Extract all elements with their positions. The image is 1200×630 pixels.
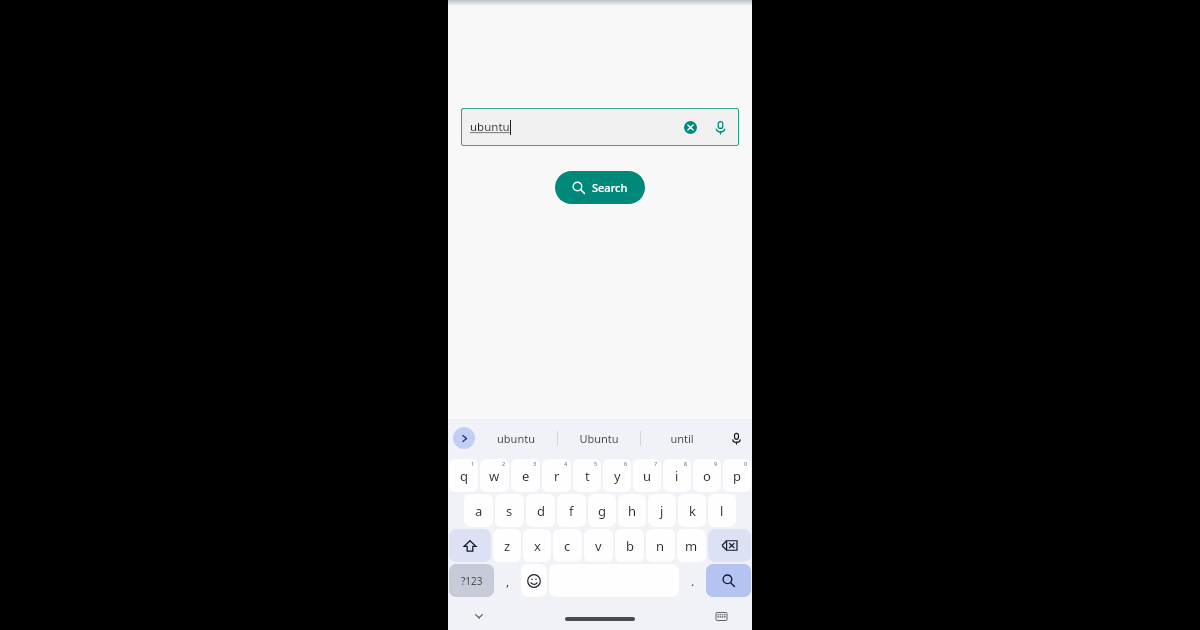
button[interactable]: n bbox=[646, 529, 675, 562]
staticText: . bbox=[691, 573, 695, 589]
button[interactable]: j bbox=[648, 494, 676, 527]
button[interactable]: b bbox=[615, 529, 644, 562]
button[interactable]: Search bbox=[706, 564, 751, 597]
staticText: i bbox=[675, 467, 679, 485]
button[interactable]: o bbox=[693, 459, 721, 492]
staticText: , bbox=[506, 573, 510, 589]
button[interactable]: Voice input bbox=[723, 425, 749, 451]
staticText: l bbox=[720, 502, 724, 520]
staticText: b bbox=[626, 537, 634, 555]
button[interactable]: f bbox=[557, 494, 586, 527]
staticText: m bbox=[685, 537, 698, 555]
staticText: Ubuntu bbox=[579, 431, 619, 446]
button[interactable]: Clear bbox=[675, 112, 705, 142]
button[interactable]: i bbox=[663, 459, 691, 492]
button[interactable]: ubuntu bbox=[475, 419, 557, 457]
staticText: 7 bbox=[654, 460, 658, 467]
button[interactable]: Period bbox=[681, 564, 704, 597]
button[interactable]: h bbox=[618, 494, 646, 527]
button[interactable]: c bbox=[553, 529, 582, 562]
button[interactable]: Comma bbox=[496, 564, 519, 597]
staticText: h bbox=[628, 502, 637, 520]
button[interactable]: m bbox=[677, 529, 706, 562]
staticText: ubuntu bbox=[497, 431, 535, 446]
button[interactable]: ubuntu bbox=[461, 108, 739, 146]
staticText: c bbox=[564, 537, 571, 555]
button[interactable]: Hide keyboard bbox=[468, 605, 490, 627]
button[interactable]: Ubuntu bbox=[558, 419, 640, 457]
staticText: u bbox=[643, 467, 652, 485]
staticText: a bbox=[475, 502, 483, 520]
button[interactable]: z bbox=[493, 529, 521, 562]
staticText: 9 bbox=[714, 460, 718, 467]
staticText: x bbox=[534, 537, 541, 555]
staticText: v bbox=[595, 537, 602, 555]
staticText: w bbox=[489, 467, 500, 485]
staticText: 6 bbox=[624, 460, 628, 467]
staticText: s bbox=[506, 502, 513, 520]
staticText: f bbox=[569, 502, 574, 520]
staticText: 3 bbox=[533, 460, 537, 467]
staticText: 2 bbox=[502, 460, 506, 467]
staticText: ubuntu bbox=[470, 119, 510, 135]
button[interactable]: a bbox=[464, 494, 493, 527]
button[interactable]: s bbox=[495, 494, 524, 527]
button[interactable]: Emoji bbox=[521, 564, 547, 597]
button[interactable]: Expand suggestions bbox=[453, 427, 475, 449]
staticText: 0 bbox=[744, 460, 748, 467]
button[interactable]: Search bbox=[555, 171, 645, 204]
button[interactable]: Shift bbox=[449, 529, 491, 562]
button[interactable]: r bbox=[542, 459, 571, 492]
button[interactable]: w bbox=[480, 459, 509, 492]
staticText: k bbox=[689, 502, 696, 520]
button[interactable]: y bbox=[603, 459, 631, 492]
button[interactable]: ?123 bbox=[449, 564, 494, 597]
staticText: ?123 bbox=[461, 574, 483, 588]
staticText: e bbox=[522, 467, 530, 485]
staticText: q bbox=[460, 467, 468, 485]
button[interactable]: x bbox=[523, 529, 551, 562]
staticText: 5 bbox=[594, 460, 598, 467]
button[interactable]: u bbox=[633, 459, 661, 492]
staticText: 8 bbox=[684, 460, 688, 467]
button[interactable]: v bbox=[584, 529, 613, 562]
button[interactable]: d bbox=[526, 494, 555, 527]
staticText: z bbox=[504, 537, 511, 555]
staticText: Search bbox=[592, 180, 628, 195]
staticText: o bbox=[703, 467, 711, 485]
staticText: g bbox=[598, 502, 606, 520]
staticText: j bbox=[660, 502, 664, 520]
staticText: until bbox=[670, 431, 694, 446]
button[interactable]: l bbox=[708, 494, 736, 527]
button[interactable]: k bbox=[678, 494, 706, 527]
button[interactable]: Voice search bbox=[705, 112, 735, 142]
button[interactable]: g bbox=[588, 494, 616, 527]
button[interactable]: t bbox=[573, 459, 601, 492]
staticText: n bbox=[656, 537, 665, 555]
staticText: t bbox=[585, 467, 590, 485]
staticText: 1 bbox=[471, 460, 475, 467]
button[interactable]: q bbox=[449, 459, 478, 492]
button[interactable]: until bbox=[641, 419, 723, 457]
staticText: r bbox=[554, 467, 560, 485]
button[interactable]: Backspace bbox=[708, 529, 751, 562]
button[interactable]: e bbox=[511, 459, 540, 492]
staticText: d bbox=[537, 502, 545, 520]
button[interactable]: p bbox=[723, 459, 751, 492]
staticText: p bbox=[733, 467, 741, 485]
button[interactable]: Switch keyboard bbox=[710, 605, 732, 627]
staticText: y bbox=[614, 467, 621, 485]
staticText: 4 bbox=[564, 460, 568, 467]
